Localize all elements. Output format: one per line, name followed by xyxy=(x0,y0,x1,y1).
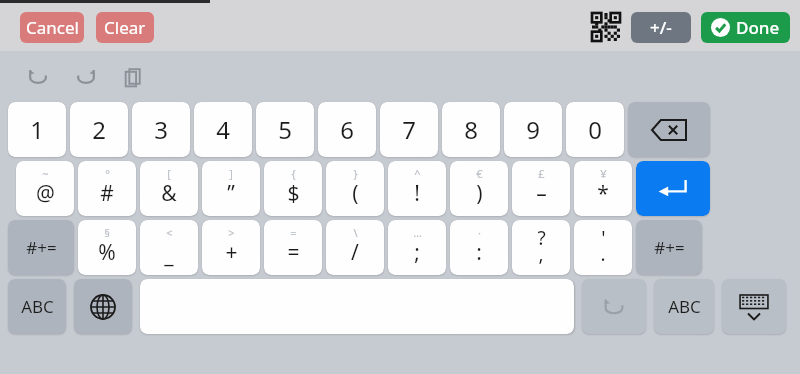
staticText: … xyxy=(413,225,422,240)
button[interactable]: Undo xyxy=(16,57,60,97)
button[interactable]: Hide keyboard xyxy=(722,279,786,334)
staticText: / xyxy=(351,238,359,267)
staticText: 8 xyxy=(464,113,478,146)
button[interactable]: Return xyxy=(636,161,710,216)
staticText: Clear xyxy=(104,16,146,39)
button[interactable]: 1 xyxy=(8,102,66,157)
button[interactable]: * xyxy=(574,161,632,216)
button[interactable]: ( xyxy=(326,161,384,216)
button[interactable]: 0 xyxy=(566,102,624,157)
button[interactable]: ; xyxy=(388,220,446,275)
staticText: = xyxy=(290,225,297,240)
button[interactable]: Backspace xyxy=(628,102,710,157)
staticText: { xyxy=(291,166,296,181)
button[interactable]: Scan QR code xyxy=(589,10,623,44)
staticText: ] xyxy=(229,166,233,181)
button[interactable]: Change language xyxy=(74,279,132,334)
staticText: } xyxy=(353,166,358,181)
button[interactable]: + xyxy=(202,220,260,275)
staticText: ; xyxy=(414,238,420,267)
button[interactable]: ) xyxy=(450,161,508,216)
button[interactable]: @ xyxy=(16,161,74,216)
staticText: £ xyxy=(538,166,545,181)
button[interactable]: Letters xyxy=(8,279,66,334)
button[interactable]: $ xyxy=(264,161,322,216)
staticText: = xyxy=(287,238,300,267)
button[interactable]: +/- xyxy=(631,12,691,43)
staticText: : xyxy=(476,238,482,267)
button[interactable]: 8 xyxy=(442,102,500,157)
button[interactable]: – xyxy=(512,161,570,216)
staticText: ” xyxy=(227,179,235,208)
button[interactable]: Clear xyxy=(96,12,154,43)
button[interactable]: ” xyxy=(202,161,260,216)
button[interactable]: Cancel xyxy=(20,12,84,43)
staticText: * xyxy=(597,179,609,208)
staticText: & xyxy=(161,179,177,208)
staticText: #+= xyxy=(26,236,57,259)
staticText: ! xyxy=(414,179,420,208)
staticText: 4 xyxy=(216,113,230,146)
staticText: 9 xyxy=(526,113,540,146)
staticText: ° xyxy=(105,166,110,181)
button[interactable]: & xyxy=(140,161,198,216)
button[interactable]: 2 xyxy=(70,102,128,157)
staticText: % xyxy=(98,238,116,267)
button[interactable]: Undo xyxy=(582,279,646,334)
button[interactable]: 5 xyxy=(256,102,314,157)
staticText: ' xyxy=(601,225,606,251)
staticText: ABC xyxy=(668,295,701,318)
staticText: Cancel xyxy=(26,16,79,39)
button[interactable]: . xyxy=(574,220,632,275)
staticText: ABC xyxy=(21,295,54,318)
button[interactable]: Paste xyxy=(112,57,156,97)
staticText: 0 xyxy=(588,113,602,146)
button[interactable]: More symbols 2 xyxy=(636,220,702,275)
staticText: 2 xyxy=(92,113,106,146)
staticText: 5 xyxy=(278,113,292,146)
staticText: ^ xyxy=(414,166,421,181)
staticText: \ xyxy=(353,225,358,240)
button[interactable]: , xyxy=(512,220,570,275)
staticText: ) xyxy=(476,179,483,208)
staticText: ? xyxy=(537,225,546,251)
staticText: 7 xyxy=(402,113,416,146)
button[interactable]: # xyxy=(78,161,136,216)
button[interactable]: 6 xyxy=(318,102,376,157)
staticText: § xyxy=(104,225,110,240)
button[interactable]: = xyxy=(264,220,322,275)
staticText: 3 xyxy=(154,113,168,146)
button[interactable]: 3 xyxy=(132,102,190,157)
staticText: . xyxy=(600,241,606,267)
button[interactable]: 7 xyxy=(380,102,438,157)
staticText: [ xyxy=(167,166,171,181)
button[interactable]: 4 xyxy=(194,102,252,157)
staticText: < xyxy=(166,225,173,240)
staticText: ( xyxy=(352,179,359,208)
staticText: ¥ xyxy=(600,166,607,181)
staticText: _ xyxy=(164,241,174,270)
button[interactable]: : xyxy=(450,220,508,275)
button[interactable]: Redo xyxy=(64,57,108,97)
staticText: ~ xyxy=(42,166,49,181)
staticText: #+= xyxy=(654,236,685,259)
button[interactable]: ! xyxy=(388,161,446,216)
staticText: – xyxy=(536,179,547,208)
button[interactable]: Done xyxy=(701,12,790,43)
staticText: @ xyxy=(36,179,55,208)
button[interactable]: _ xyxy=(140,220,198,275)
staticText: > xyxy=(228,225,235,240)
staticText: 1 xyxy=(30,113,44,146)
button[interactable]: 9 xyxy=(504,102,562,157)
staticText: +/- xyxy=(650,16,672,39)
staticText: + xyxy=(225,238,238,267)
button[interactable]: More symbols xyxy=(8,220,74,275)
button[interactable]: % xyxy=(78,220,136,275)
staticText: · xyxy=(478,225,481,240)
staticText: , xyxy=(538,241,544,267)
button[interactable]: / xyxy=(326,220,384,275)
staticText: € xyxy=(476,166,483,181)
staticText: # xyxy=(100,179,114,208)
button[interactable]: Letters 2 xyxy=(654,279,714,334)
